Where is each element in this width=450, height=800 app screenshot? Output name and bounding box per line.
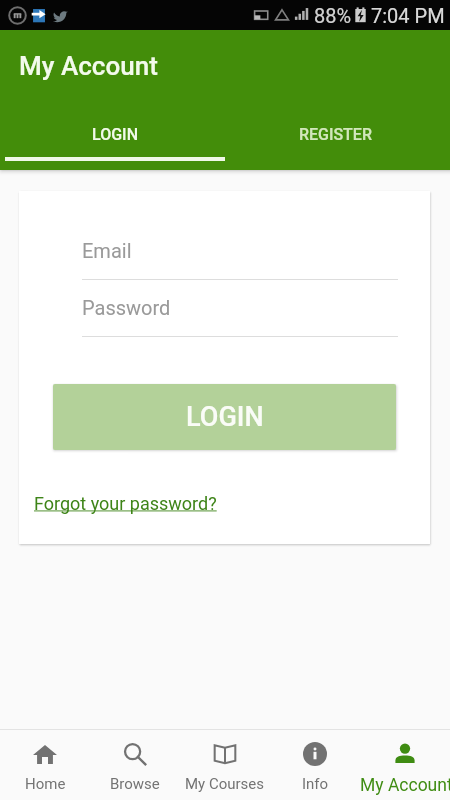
button[interactable]: Forgot your password? [34,493,217,514]
other: Browse [123,742,147,766]
staticText: 88% [314,4,352,27]
staticText: 7:04 PM [371,4,445,27]
staticText: REGISTER [299,125,372,144]
staticText: My Courses [185,775,265,793]
button[interactable]: My Courses [180,730,270,800]
staticText: Forgot your password? [34,493,217,514]
staticText: Browse [110,775,160,793]
staticText: Password [82,296,171,319]
other: My Courses [213,742,237,766]
button[interactable]: LOGIN [53,384,396,450]
staticText: Email [82,239,132,262]
button[interactable]: Browse [90,730,180,800]
button[interactable]: Home [0,730,90,800]
button[interactable]: My Account [360,730,450,800]
other: Home [33,742,57,766]
staticText: Home [25,775,66,793]
button[interactable]: Info [270,730,360,800]
other: My Account [393,742,417,766]
staticText: LOGIN [186,401,264,433]
staticText: LOGIN [92,125,138,144]
staticText: Info [302,775,329,793]
staticText: My Account [19,51,158,81]
button[interactable]: REGISTER [225,107,446,157]
button[interactable]: LOGIN [5,107,225,157]
other: Info [303,742,327,766]
staticText: My Account [360,775,450,796]
